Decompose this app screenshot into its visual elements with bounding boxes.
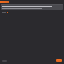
button[interactable] <box>2 11 62 13</box>
button[interactable] <box>0 1 9 3</box>
button[interactable]: Confirm <box>56 59 62 62</box>
button[interactable] <box>1 4 63 10</box>
button[interactable]: Cancel <box>2 60 7 62</box>
